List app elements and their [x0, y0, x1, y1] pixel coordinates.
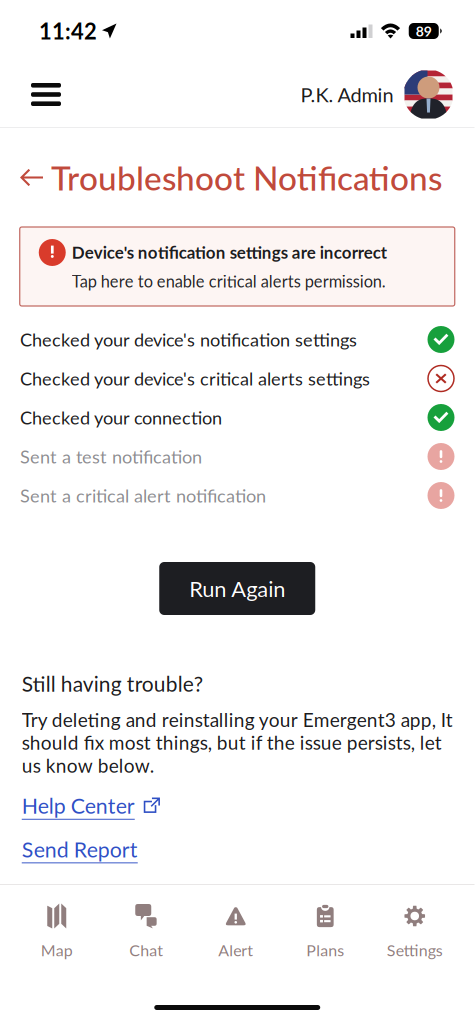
button[interactable]: Chat: [101, 866, 191, 999]
button[interactable]: Send Report: [22, 818, 138, 862]
staticText: Checked your device's critical alerts se…: [20, 368, 370, 389]
staticText: P.K. Admin: [300, 82, 393, 106]
staticText: Settings: [387, 940, 443, 960]
staticText: Run Again: [189, 575, 285, 602]
staticText: 11:42: [39, 18, 97, 44]
staticText: Tap here to enable critical alerts permi…: [72, 271, 386, 291]
staticText: Sent a critical alert notification: [20, 485, 266, 506]
staticText: 89: [416, 23, 432, 39]
button[interactable]: Help Center: [22, 777, 161, 818]
button[interactable]: Run Again: [159, 562, 315, 615]
staticText: Troubleshoot Notifications: [51, 157, 442, 197]
staticText: Checked your device's notification setti…: [20, 329, 357, 350]
staticText: Checked your connection: [20, 407, 222, 428]
staticText: Device's notification settings are incor…: [72, 242, 387, 262]
button[interactable]: P.K. Admin: [300, 64, 453, 124]
staticText: Map: [41, 940, 73, 960]
staticText: Still having trouble?: [22, 671, 203, 696]
staticText: Send Report: [22, 836, 138, 862]
button[interactable]: Alert: [191, 866, 280, 999]
staticText: Help Center: [22, 793, 135, 818]
button[interactable]: Map: [12, 866, 101, 999]
staticText: Try deleting and reinstalling your Emerg…: [22, 708, 453, 777]
button[interactable]: Plans: [280, 866, 370, 999]
staticText: Plans: [306, 940, 344, 960]
staticText: Sent a test notification: [20, 446, 202, 467]
button[interactable]: Settings: [370, 866, 459, 999]
button[interactable]: Menu: [29, 71, 77, 118]
button[interactable]: Device's notification settings are incor…: [20, 227, 455, 306]
staticText: Alert: [218, 940, 253, 960]
staticText: Chat: [129, 940, 163, 960]
